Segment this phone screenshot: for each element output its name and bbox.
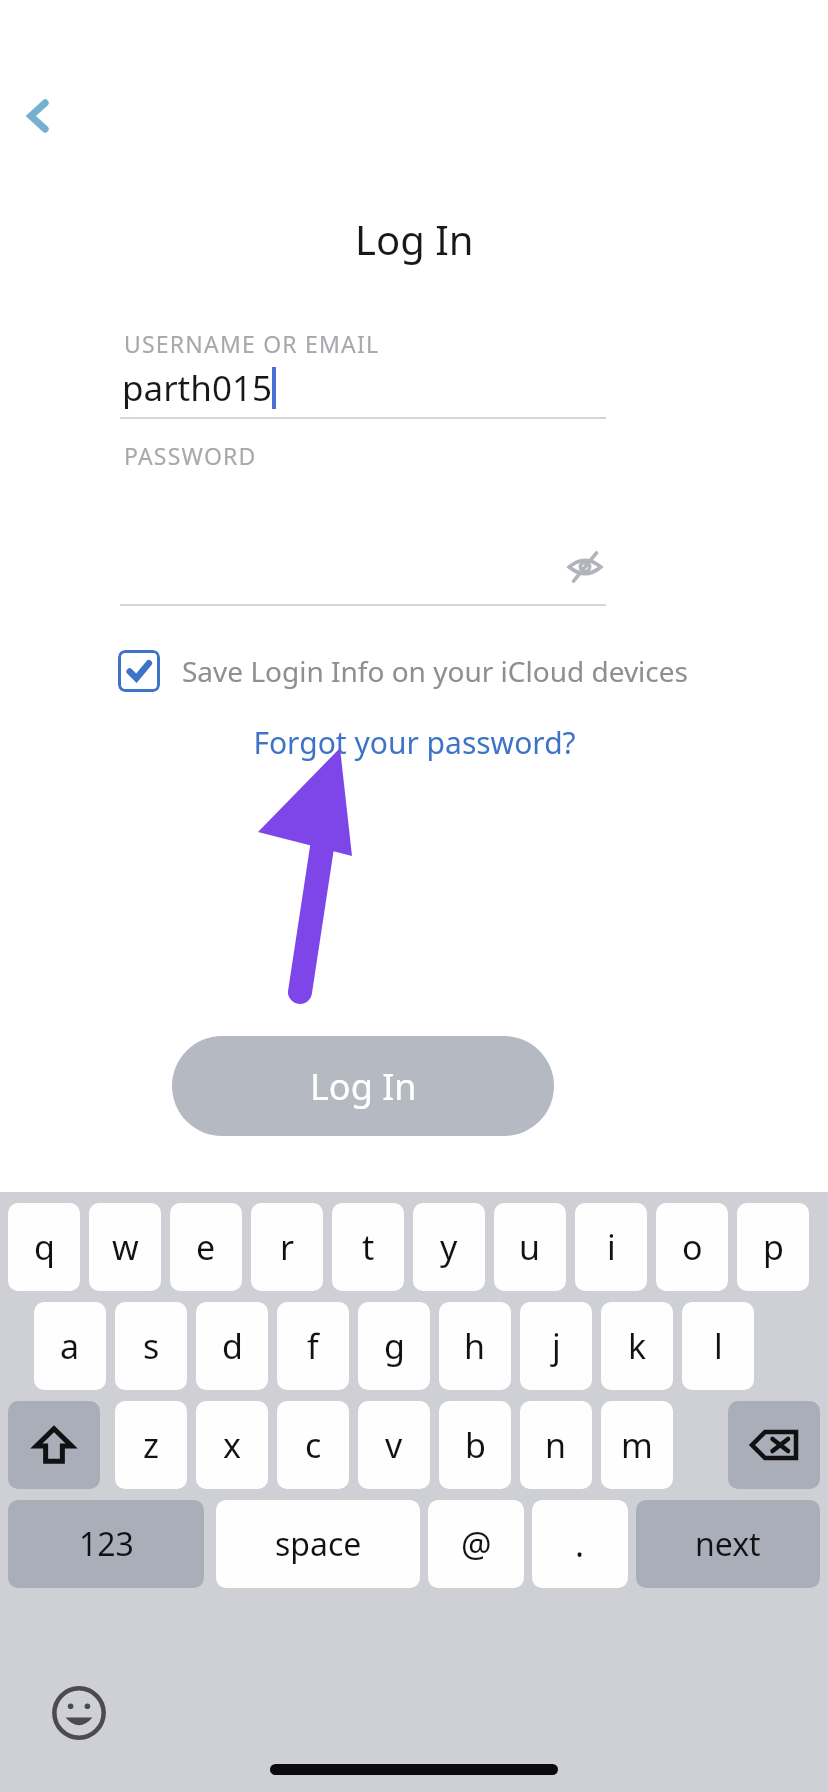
staticText: Forgot your password?	[253, 722, 576, 763]
button[interactable]: q	[8, 1203, 80, 1291]
button[interactable]: .	[532, 1500, 628, 1588]
staticText: w	[112, 1224, 139, 1270]
button[interactable]: b	[439, 1401, 511, 1489]
button[interactable]: j	[520, 1302, 592, 1390]
staticText: .	[575, 1521, 585, 1567]
button[interactable]: s	[115, 1302, 187, 1390]
button[interactable]: f	[277, 1302, 349, 1390]
button[interactable]: @	[428, 1500, 524, 1588]
staticText: g	[384, 1323, 405, 1369]
staticText: q	[34, 1224, 55, 1270]
button[interactable]: c	[277, 1401, 349, 1489]
button[interactable]: Show password	[556, 538, 614, 596]
staticText: k	[628, 1323, 647, 1369]
button[interactable]: Backspace	[728, 1401, 820, 1489]
staticText: i	[607, 1224, 616, 1270]
staticText: e	[196, 1224, 216, 1270]
staticText: n	[545, 1422, 567, 1468]
button[interactable]: 123	[8, 1500, 204, 1588]
button[interactable]: Save Login Info on your iCloud devices	[118, 650, 688, 692]
staticText: next	[695, 1522, 761, 1566]
staticText: l	[714, 1323, 723, 1369]
staticText: v	[385, 1422, 403, 1468]
button[interactable]: Shift	[8, 1401, 100, 1489]
staticText: y	[440, 1224, 458, 1270]
button[interactable]: i	[575, 1203, 647, 1291]
staticText: h	[464, 1323, 486, 1369]
button[interactable]: k	[601, 1302, 673, 1390]
staticText: o	[682, 1224, 703, 1270]
staticText: u	[519, 1224, 541, 1270]
button[interactable]: m	[601, 1401, 673, 1489]
button[interactable]: h	[439, 1302, 511, 1390]
button[interactable]: g	[358, 1302, 430, 1390]
staticText: f	[307, 1323, 319, 1369]
button[interactable]: o	[656, 1203, 728, 1291]
button[interactable]: n	[520, 1401, 592, 1489]
staticText: p	[763, 1224, 784, 1270]
staticText: b	[465, 1422, 486, 1468]
staticText: j	[552, 1323, 561, 1369]
staticText: d	[222, 1323, 243, 1369]
button[interactable]: Forgot your password?	[245, 718, 584, 767]
button[interactable]: y	[413, 1203, 485, 1291]
button[interactable]: space	[216, 1500, 420, 1588]
staticText: m	[621, 1422, 653, 1468]
staticText: Save Login Info on your iCloud devices	[182, 652, 688, 690]
staticText: t	[362, 1224, 375, 1270]
button[interactable]: Back	[8, 86, 68, 146]
staticText: a	[60, 1323, 80, 1369]
staticText: space	[275, 1522, 362, 1566]
button[interactable]: v	[358, 1401, 430, 1489]
staticText: USERNAME OR EMAIL	[124, 328, 380, 359]
button[interactable]: Emoji	[48, 1682, 110, 1744]
staticText: Log In	[310, 1062, 417, 1111]
button[interactable]: a	[34, 1302, 106, 1390]
button[interactable]: u	[494, 1203, 566, 1291]
staticText: Log In	[355, 212, 474, 266]
button[interactable]: p	[737, 1203, 809, 1291]
staticText: r	[280, 1224, 295, 1270]
staticText: x	[223, 1422, 241, 1468]
button[interactable]: r	[251, 1203, 323, 1291]
staticText: PASSWORD	[124, 440, 257, 471]
button[interactable]: next	[636, 1500, 820, 1588]
button[interactable]: Log In	[172, 1036, 554, 1136]
staticText: @	[461, 1521, 492, 1567]
button[interactable]: d	[196, 1302, 268, 1390]
staticText: c	[305, 1422, 322, 1468]
button[interactable]: l	[682, 1302, 754, 1390]
button[interactable]: z	[115, 1401, 187, 1489]
staticText: z	[143, 1422, 159, 1468]
staticText: parth015	[122, 364, 272, 412]
staticText: 123	[79, 1522, 134, 1566]
staticText: s	[143, 1323, 160, 1369]
button[interactable]: t	[332, 1203, 404, 1291]
button[interactable]: e	[170, 1203, 242, 1291]
button[interactable]: x	[196, 1401, 268, 1489]
button[interactable]: w	[89, 1203, 161, 1291]
